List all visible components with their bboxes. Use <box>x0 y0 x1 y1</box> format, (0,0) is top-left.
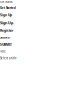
staticText: Register <box>0 28 13 33</box>
staticText: Sign Up <box>0 20 13 25</box>
staticText: Sign Up <box>0 13 12 17</box>
staticText: Get Started <box>0 0 13 3</box>
staticText: SUBMIT <box>0 36 11 39</box>
staticText: Title <box>0 50 6 53</box>
staticText: Select a title <box>0 56 17 60</box>
staticText: SUBMIT <box>0 42 12 47</box>
staticText: Get Started <box>0 6 16 10</box>
